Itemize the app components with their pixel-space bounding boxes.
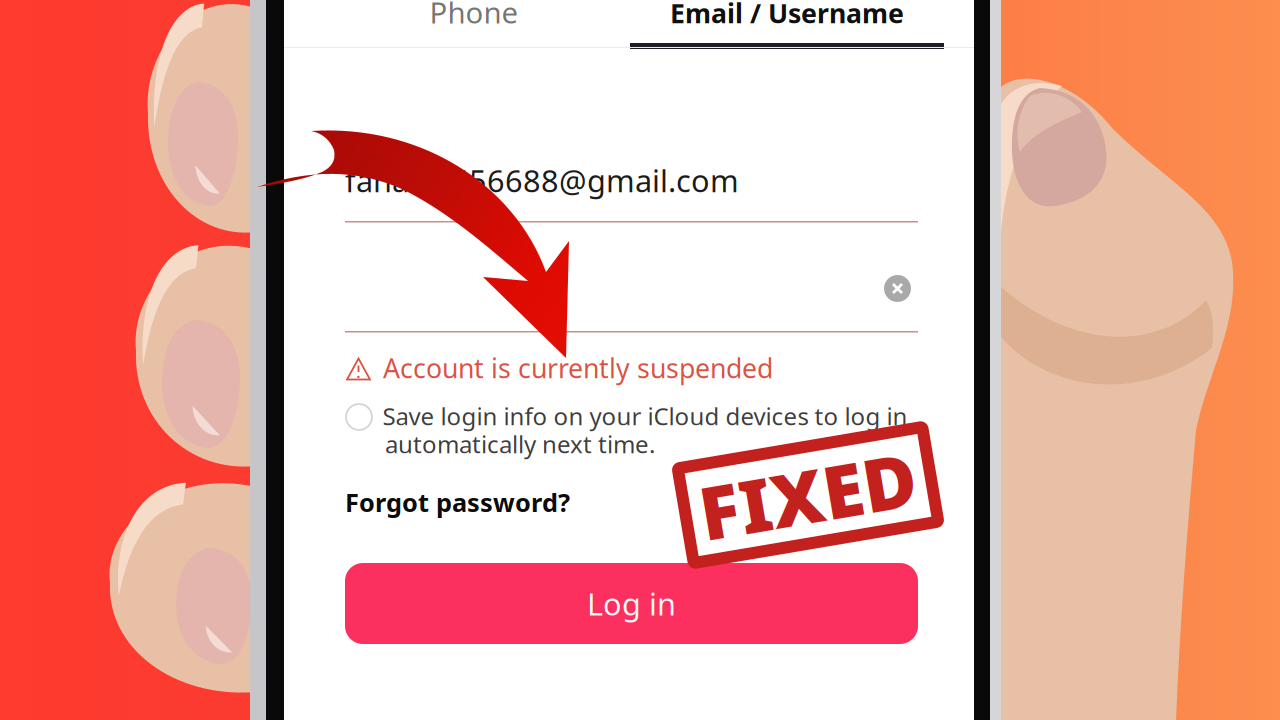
staticText: FIXED <box>698 446 917 544</box>
staticText: Email / Username <box>670 0 904 31</box>
button[interactable]: Clear password <box>0 0 1280 720</box>
staticText: Log in <box>587 583 676 624</box>
staticText: Forgot password? <box>345 485 570 519</box>
staticText: Account is currently suspended <box>383 350 773 386</box>
button[interactable]: Log in <box>0 0 1280 720</box>
button[interactable]: Save login info on your iCloud devices t… <box>0 0 1280 720</box>
staticText: Save login info on your iCloud devices t… <box>382 400 907 432</box>
button[interactable]: Phone <box>0 0 1280 720</box>
staticText: automatically next time. <box>385 428 655 460</box>
button[interactable]: Email / Username <box>0 0 1280 720</box>
staticText: faha.. 4556688@gmail.com <box>345 160 739 201</box>
button[interactable]: Forgot password? <box>0 0 1280 720</box>
staticText: Phone <box>429 0 518 31</box>
